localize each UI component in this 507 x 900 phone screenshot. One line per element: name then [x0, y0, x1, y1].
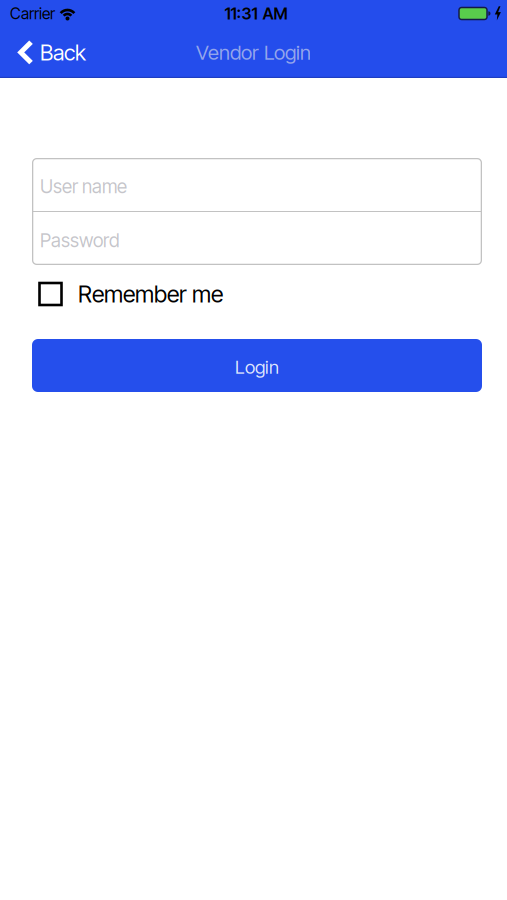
button[interactable]: Remember me [32, 282, 223, 305]
staticText: User name [40, 175, 127, 198]
staticText: Remember me [78, 280, 223, 308]
staticText: Back [40, 39, 86, 66]
button[interactable]: Back [0, 39, 94, 66]
staticText: Password [40, 229, 120, 252]
staticText: Carrier [10, 4, 55, 23]
staticText: Vendor Login [196, 40, 311, 65]
button[interactable]: Login [32, 339, 482, 392]
staticText: 11:31 AM [224, 4, 287, 23]
staticText: Login [235, 356, 279, 378]
